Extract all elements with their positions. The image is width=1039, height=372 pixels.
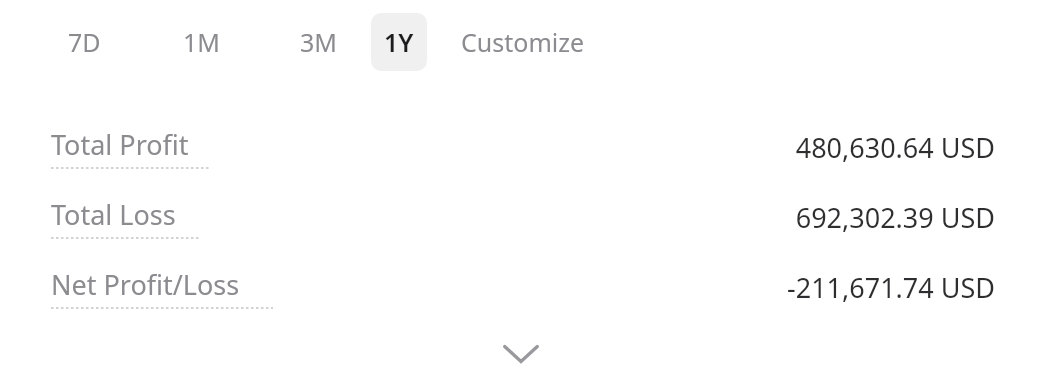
- staticText: 692,302.39 USD: [795, 199, 995, 236]
- staticText: Total Loss: [51, 196, 176, 233]
- button[interactable]: Total Profit: [0, 112, 1039, 182]
- staticText: -211,671.74 USD: [786, 269, 995, 306]
- button[interactable]: Expand: [495, 328, 547, 372]
- button[interactable]: Customize: [448, 13, 598, 71]
- button[interactable]: 7D: [55, 13, 114, 71]
- staticText: 1M: [183, 25, 220, 59]
- button[interactable]: Net Profit/Loss: [0, 252, 1039, 322]
- staticText: Customize: [461, 25, 585, 59]
- button[interactable]: 1Y: [371, 13, 427, 71]
- staticText: Total Profit: [51, 126, 189, 163]
- staticText: 480,630.64 USD: [795, 129, 995, 166]
- button[interactable]: 3M: [287, 13, 350, 71]
- button[interactable]: Total Loss: [0, 182, 1039, 252]
- staticText: Net Profit/Loss: [51, 266, 240, 303]
- staticText: 1Y: [384, 25, 414, 59]
- staticText: 7D: [68, 25, 101, 59]
- staticText: 3M: [300, 25, 337, 59]
- button[interactable]: 1M: [170, 13, 233, 71]
